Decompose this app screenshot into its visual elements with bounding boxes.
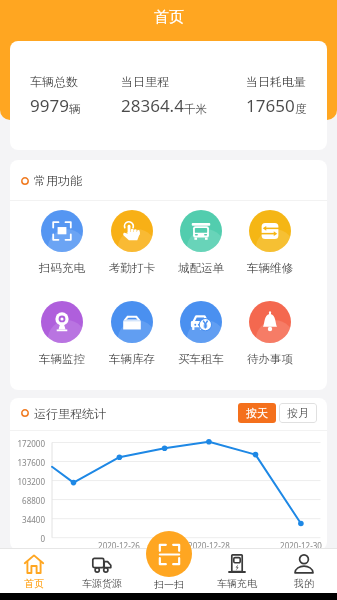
staticText: 车辆监控 xyxy=(39,352,85,366)
staticText: 137600 xyxy=(10,457,45,468)
staticText: 当日里程 xyxy=(121,74,169,89)
staticText: 运行里程统计 xyxy=(34,406,106,421)
button[interactable]: 按月 xyxy=(279,403,317,423)
staticText: 28364.4 xyxy=(121,94,184,117)
button[interactable]: 扫码充电 xyxy=(27,210,97,275)
staticText: 扫码充电 xyxy=(39,261,85,275)
staticText: 买车租车 xyxy=(178,352,224,366)
staticText: 17650 xyxy=(246,94,295,117)
staticText: 当日耗电量 xyxy=(246,74,306,89)
staticText: 103200 xyxy=(10,476,45,487)
button[interactable]: 车源货源 xyxy=(68,548,136,593)
staticText: 0 xyxy=(10,533,45,544)
button[interactable]: 车辆库存 xyxy=(97,301,166,366)
button[interactable]: 待办事项 xyxy=(235,301,304,366)
staticText: 按月 xyxy=(287,406,309,420)
staticText: 车源货源 xyxy=(82,577,122,590)
staticText: 按天 xyxy=(246,406,268,420)
button[interactable]: 按天 xyxy=(238,403,276,423)
staticText: 考勤打卡 xyxy=(109,261,155,275)
staticText: 城配运单 xyxy=(178,261,224,275)
staticText: 车辆充电 xyxy=(217,577,257,590)
staticText: 车辆总数 xyxy=(30,74,78,89)
staticText: 2020-12-26 xyxy=(97,540,141,550)
staticText: 2020-12-28 xyxy=(187,540,231,550)
staticText: 我的 xyxy=(294,577,314,590)
staticText: 2020-12-30 xyxy=(279,540,323,550)
button[interactable]: 城配运单 xyxy=(166,210,235,275)
staticText: 辆 xyxy=(69,102,81,116)
staticText: 34400 xyxy=(10,514,45,525)
button[interactable]: 买车租车 xyxy=(166,301,235,366)
button[interactable]: 车辆维修 xyxy=(235,210,304,275)
staticText: 度 xyxy=(295,102,307,116)
button[interactable]: 扫一扫 xyxy=(146,531,192,577)
staticText: 扫一扫 xyxy=(154,578,184,591)
staticText: 千米 xyxy=(184,102,207,116)
button[interactable]: 我的 xyxy=(270,548,337,593)
button[interactable]: 考勤打卡 xyxy=(97,210,166,275)
button[interactable]: 车辆充电 xyxy=(203,548,270,593)
button[interactable]: 车辆监控 xyxy=(27,301,97,366)
button[interactable]: 首页 xyxy=(0,548,68,593)
staticText: 9979 xyxy=(30,94,69,117)
staticText: 车辆维修 xyxy=(247,261,293,275)
staticText: 首页 xyxy=(24,577,44,590)
staticText: 172000 xyxy=(10,438,45,449)
staticText: 68800 xyxy=(10,495,45,506)
staticText: 首页 xyxy=(154,8,184,27)
staticText: 待办事项 xyxy=(247,352,293,366)
staticText: 常用功能 xyxy=(34,173,82,188)
staticText: 车辆库存 xyxy=(109,352,155,366)
